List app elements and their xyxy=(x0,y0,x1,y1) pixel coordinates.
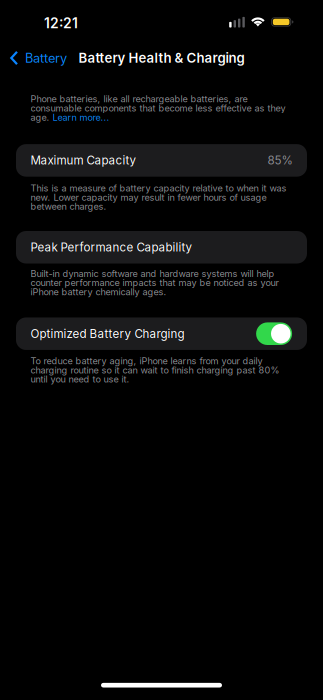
staticText: Phone batteries, like all rechargeable b… xyxy=(30,93,285,123)
button[interactable]: Peak Performance Capability xyxy=(16,231,307,263)
staticText: This is a measure of battery capacity re… xyxy=(30,183,286,212)
staticText: To reduce battery aging, iPhone learns f… xyxy=(30,355,279,385)
staticText: Peak Performance Capability xyxy=(30,240,192,254)
staticText: Battery xyxy=(25,50,67,66)
button[interactable]: Optimized Battery Charging xyxy=(256,322,292,345)
staticText: Optimized Battery Charging xyxy=(30,327,184,341)
button[interactable]: Maximum Capacity xyxy=(16,144,307,177)
staticText: Battery Health & Charging xyxy=(78,50,244,66)
staticText: 12:21 xyxy=(44,15,78,32)
staticText: Maximum Capacity xyxy=(30,153,136,167)
button[interactable]: Battery xyxy=(0,44,86,71)
staticText: Built-in dynamic software and hardware s… xyxy=(30,268,278,297)
staticText: 85% xyxy=(267,153,292,167)
